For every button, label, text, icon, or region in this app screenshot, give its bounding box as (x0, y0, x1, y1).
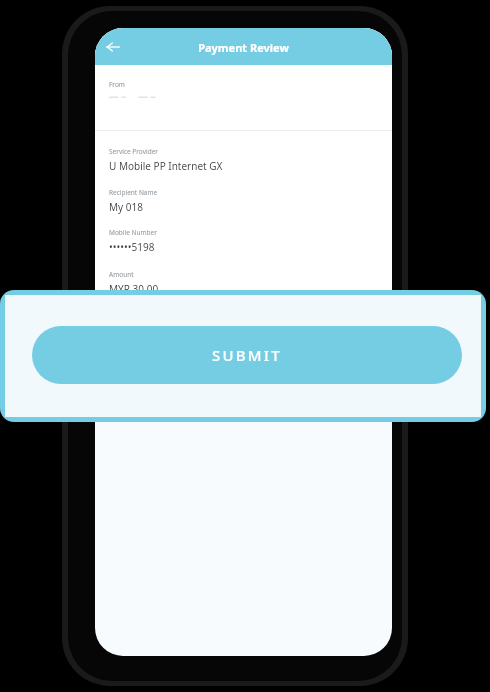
staticText: ▁▁ ▁ ▁▁ ▁ (109, 90, 156, 98)
button[interactable]: SUBMIT (32, 326, 462, 384)
staticText: MYR 30.00 (109, 282, 159, 296)
staticText: Recipient Name (109, 188, 158, 197)
staticText: Service Provider (109, 147, 158, 156)
staticText: Mobile Number (109, 228, 157, 237)
staticText: Amount (109, 270, 134, 279)
staticText: U Mobile PP Internet GX (109, 159, 223, 173)
staticText: SUBMIT (212, 345, 282, 365)
button[interactable]: Back (100, 34, 126, 60)
staticText: Payment Review (95, 40, 392, 77)
staticText: ••••••5198 (109, 240, 155, 254)
staticText: From (109, 80, 125, 89)
staticText: My 018 (109, 200, 143, 214)
